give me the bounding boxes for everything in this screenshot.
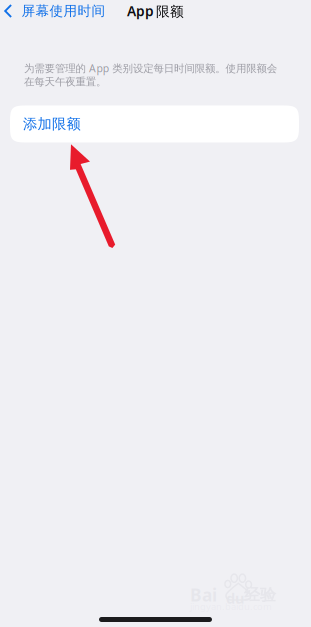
staticText: 为需要管理的 App 类别设定每日时间限额。使用限额会 在每天午夜重置。 (24, 61, 277, 88)
staticText: Bai (190, 583, 217, 607)
staticText: 添加限额 (23, 115, 80, 133)
staticText: 屏幕使用时间 (21, 2, 105, 19)
staticText: App 限额 (127, 2, 184, 20)
staticText: du (226, 588, 245, 608)
button[interactable]: 添加限额 (10, 105, 299, 142)
button[interactable]: 屏幕使用时间 (0, 0, 111, 22)
staticText: 经验 (244, 585, 276, 605)
